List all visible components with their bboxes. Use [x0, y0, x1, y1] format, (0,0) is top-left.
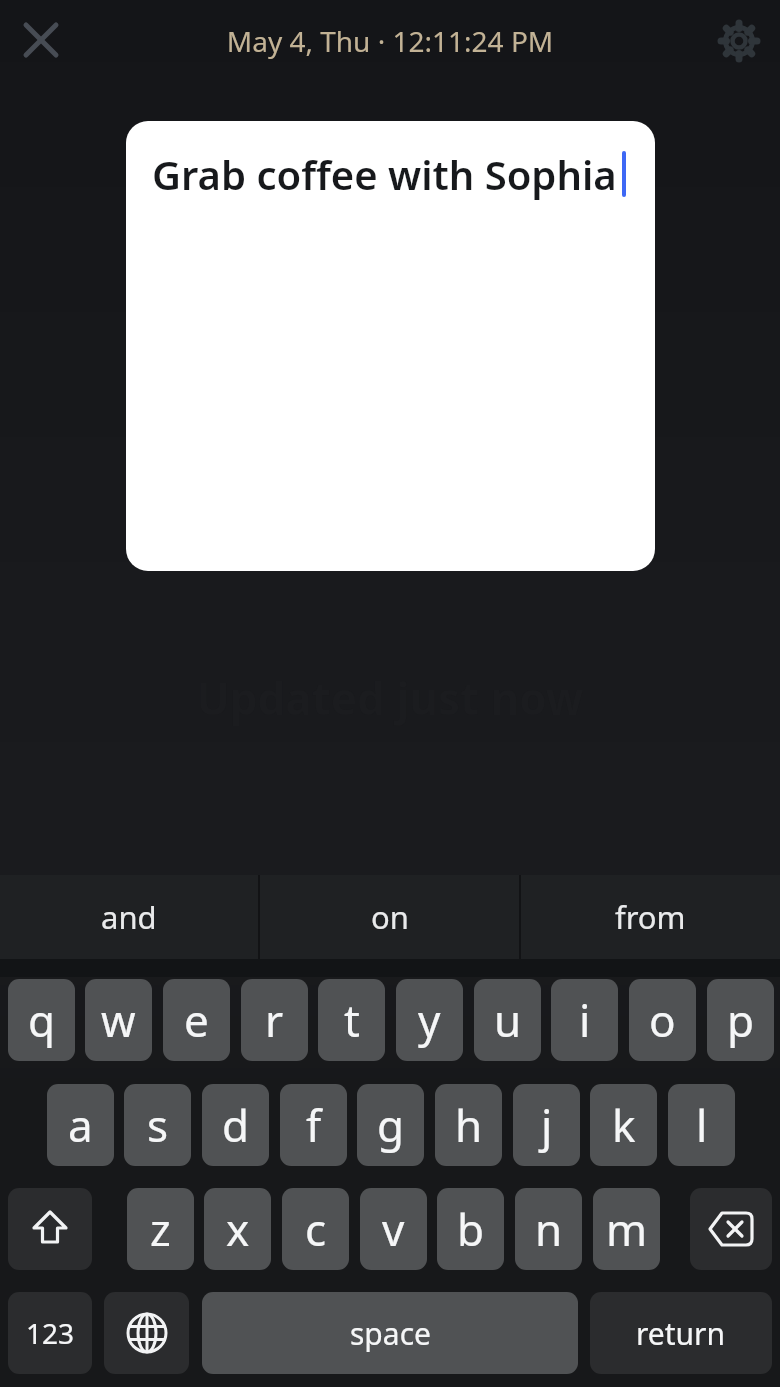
- button[interactable]: from: [521, 875, 780, 959]
- staticText: p: [727, 990, 755, 1050]
- staticText: g: [377, 1095, 405, 1155]
- staticText: from: [615, 896, 686, 938]
- button[interactable]: m: [593, 1188, 660, 1270]
- button[interactable]: w: [85, 979, 152, 1061]
- staticText: h: [455, 1095, 483, 1155]
- staticText: Grab coffee with Sophia: [152, 147, 617, 201]
- button[interactable]: f: [280, 1084, 347, 1166]
- button[interactable]: c: [282, 1188, 349, 1270]
- staticText: 123: [26, 1314, 75, 1352]
- staticText: k: [612, 1095, 636, 1155]
- staticText: l: [696, 1095, 708, 1155]
- button[interactable]: y: [396, 979, 463, 1061]
- button[interactable]: [17, 16, 65, 64]
- staticText: on: [371, 896, 409, 938]
- staticText: space: [350, 1313, 431, 1354]
- button[interactable]: k: [590, 1084, 657, 1166]
- staticText: May 4, Thu · 12:11:24 PM: [0, 22, 780, 60]
- button[interactable]: r: [241, 979, 308, 1061]
- button[interactable]: t: [318, 979, 385, 1061]
- button[interactable]: l: [668, 1084, 735, 1166]
- staticText: m: [606, 1199, 648, 1259]
- button[interactable]: h: [435, 1084, 502, 1166]
- staticText: u: [494, 990, 522, 1050]
- button[interactable]: 123: [8, 1292, 92, 1374]
- staticText: j: [541, 1095, 553, 1155]
- button[interactable]: e: [163, 979, 230, 1061]
- staticText: v: [382, 1199, 405, 1259]
- button[interactable]: i: [551, 979, 618, 1061]
- staticText: y: [418, 990, 441, 1050]
- button[interactable]: q: [8, 979, 75, 1061]
- staticText: r: [265, 990, 284, 1050]
- button[interactable]: space: [202, 1292, 578, 1374]
- button[interactable]: [8, 1188, 92, 1270]
- button[interactable]: g: [357, 1084, 424, 1166]
- staticText: a: [68, 1095, 93, 1155]
- button[interactable]: j: [513, 1084, 580, 1166]
- button[interactable]: v: [360, 1188, 427, 1270]
- button[interactable]: [690, 1188, 772, 1270]
- staticText: c: [305, 1199, 327, 1259]
- staticText: x: [226, 1199, 250, 1259]
- staticText: b: [457, 1199, 485, 1259]
- staticText: and: [101, 896, 157, 938]
- button[interactable]: s: [124, 1084, 191, 1166]
- button[interactable]: a: [47, 1084, 114, 1166]
- staticText: d: [222, 1095, 250, 1155]
- staticText: q: [28, 990, 56, 1050]
- staticText: return: [636, 1313, 726, 1354]
- button[interactable]: x: [204, 1188, 271, 1270]
- staticText: w: [101, 990, 136, 1050]
- staticText: i: [579, 990, 591, 1050]
- button[interactable]: [104, 1292, 189, 1374]
- button[interactable]: o: [629, 979, 696, 1061]
- button[interactable]: b: [437, 1188, 504, 1270]
- button[interactable]: and: [0, 875, 258, 959]
- button[interactable]: p: [707, 979, 774, 1061]
- staticText: z: [150, 1199, 171, 1259]
- button[interactable]: d: [202, 1084, 269, 1166]
- staticText: n: [535, 1199, 563, 1259]
- button[interactable]: n: [515, 1188, 582, 1270]
- button[interactable]: return: [590, 1292, 772, 1374]
- button[interactable]: on: [260, 875, 519, 959]
- button[interactable]: u: [474, 979, 541, 1061]
- button[interactable]: Grab coffee with Sophia: [126, 121, 655, 571]
- staticText: s: [147, 1095, 169, 1155]
- button[interactable]: z: [127, 1188, 194, 1270]
- staticText: o: [649, 990, 676, 1050]
- button[interactable]: [715, 17, 763, 65]
- staticText: e: [184, 990, 209, 1050]
- staticText: f: [306, 1095, 322, 1155]
- staticText: t: [344, 990, 360, 1050]
